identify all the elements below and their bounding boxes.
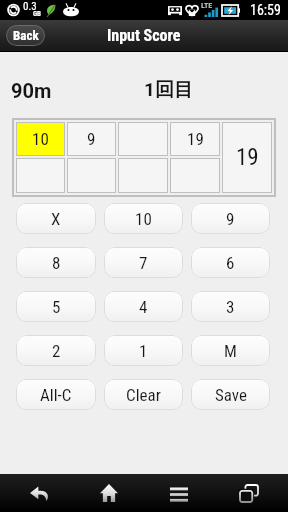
button[interactable]: 7 — [104, 247, 183, 278]
button[interactable] — [16, 158, 65, 193]
staticText: 1 — [139, 341, 148, 361]
staticText: 90m — [11, 79, 52, 102]
staticText: 3 — [226, 297, 235, 317]
staticText: Save — [215, 385, 247, 405]
staticText: Back — [13, 28, 39, 43]
button[interactable]: 9 — [67, 122, 116, 156]
button[interactable]: All-C — [16, 379, 96, 410]
button[interactable] — [170, 158, 220, 193]
button[interactable]: 5 — [16, 291, 96, 322]
staticText: X — [51, 209, 61, 229]
button[interactable] — [118, 122, 168, 156]
staticText: 7 — [139, 253, 148, 273]
staticText: Input Score — [107, 26, 181, 45]
button[interactable]: 3 — [191, 291, 270, 322]
staticText: 10 — [32, 129, 49, 149]
staticText: 2 — [52, 341, 61, 361]
button[interactable]: Menu — [148, 474, 210, 512]
button[interactable]: 10 — [104, 203, 183, 234]
button[interactable]: X — [16, 203, 96, 234]
staticText: 8 — [52, 253, 61, 273]
button[interactable]: 2 — [16, 335, 96, 366]
button[interactable]: 19 — [170, 122, 220, 156]
button[interactable]: 19 — [222, 122, 272, 193]
button[interactable] — [118, 158, 168, 193]
staticText: 0.3 — [23, 0, 37, 13]
button[interactable]: Back — [6, 25, 45, 46]
staticText: 19 — [236, 144, 259, 171]
button[interactable]: Save — [191, 379, 270, 410]
button[interactable] — [67, 158, 116, 193]
button[interactable]: 6 — [191, 247, 270, 278]
button[interactable]: Home — [78, 474, 140, 512]
staticText: GB — [33, 10, 42, 18]
staticText: 4 — [139, 297, 148, 317]
button[interactable]: 8 — [16, 247, 96, 278]
button[interactable]: Back — [8, 474, 70, 512]
staticText: 6 — [226, 253, 235, 273]
button[interactable]: Recent apps — [218, 474, 280, 512]
staticText: Clear — [126, 385, 161, 405]
staticText: 10 — [135, 209, 152, 229]
staticText: 9 — [226, 209, 235, 229]
button[interactable]: 9 — [191, 203, 270, 234]
button[interactable]: M — [191, 335, 270, 366]
button[interactable]: Clear — [104, 379, 183, 410]
staticText: 9 — [87, 129, 96, 149]
button[interactable]: 10 — [16, 122, 65, 156]
staticText: 1回目 — [144, 78, 193, 102]
staticText: All-C — [40, 385, 72, 405]
staticText: 5 — [52, 297, 61, 317]
button[interactable]: 4 — [104, 291, 183, 322]
staticText: 16:59 — [250, 2, 281, 18]
staticText: LTE — [201, 1, 213, 10]
staticText: 19 — [187, 129, 204, 149]
staticText: M — [224, 341, 237, 361]
button[interactable]: 1 — [104, 335, 183, 366]
